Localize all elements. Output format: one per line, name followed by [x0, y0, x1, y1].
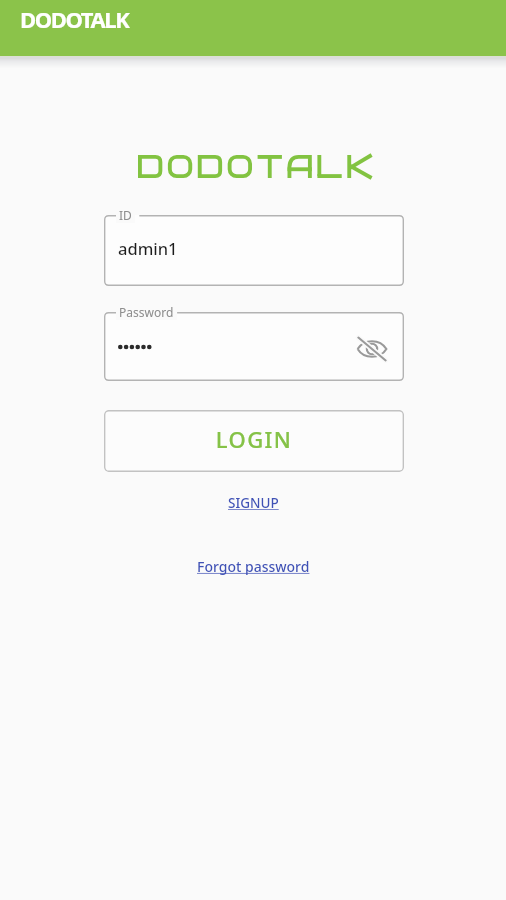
- button[interactable]: Password: [104, 312, 404, 381]
- staticText: ID: [119, 207, 132, 223]
- staticText: Password: [119, 304, 174, 320]
- staticText: admin1: [118, 237, 178, 259]
- button[interactable]: Forgot password: [178, 553, 328, 579]
- button[interactable]: ID: [104, 215, 404, 286]
- button[interactable]: SIGNUP: [213, 490, 293, 516]
- staticText: LOGIN: [104, 424, 404, 454]
- button[interactable]: LOGIN: [104, 410, 404, 472]
- staticText: DODOTALK: [20, 4, 129, 34]
- staticText: Forgot password: [197, 557, 310, 576]
- button[interactable]: Show password: [353, 330, 391, 368]
- staticText: SIGNUP: [228, 494, 279, 512]
